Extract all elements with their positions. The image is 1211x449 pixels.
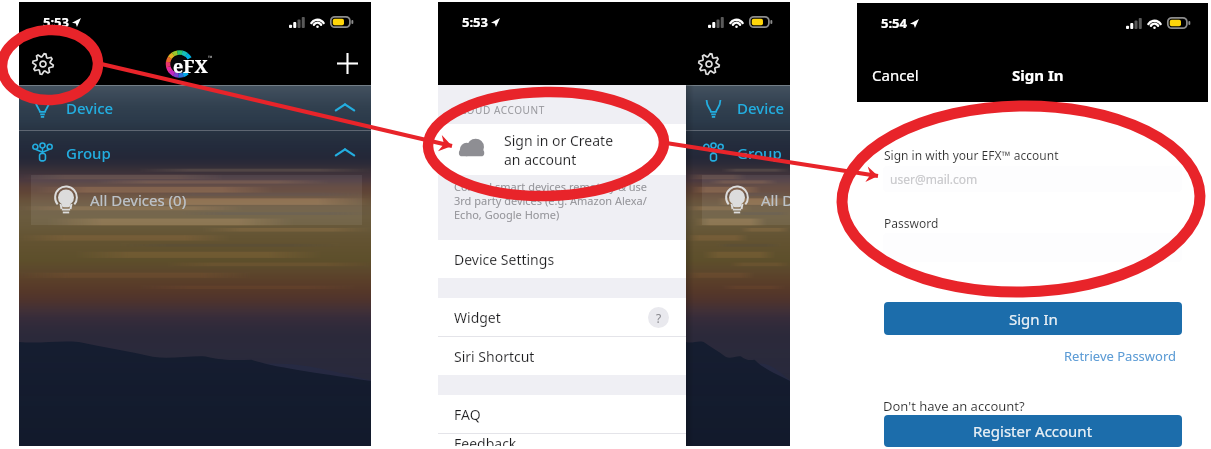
button[interactable]: user@mail.com: [883, 166, 1182, 192]
staticText: Sign In: [1009, 309, 1058, 329]
button[interactable]: All Devices (0): [31, 175, 362, 225]
staticText: ™: [208, 54, 213, 62]
staticText: user@mail.com: [890, 171, 978, 187]
button[interactable]: Sign in or Create: [438, 124, 686, 175]
button[interactable]: Feedback: [438, 434, 686, 446]
staticText: Password: [884, 215, 939, 231]
staticText: Feedback: [454, 434, 517, 446]
button[interactable]: Widget: [438, 298, 686, 336]
staticText: FAQ: [454, 405, 481, 424]
staticText: All Devices (0): [90, 190, 187, 210]
staticText: Group: [66, 143, 111, 163]
staticText: Group: [737, 143, 782, 163]
staticText: 5:53: [43, 13, 69, 31]
button[interactable]: Cancel: [857, 55, 931, 95]
staticText: All Devices (0): [761, 190, 790, 210]
staticText: CLOUD ACCOUNT: [454, 103, 545, 117]
button[interactable]: Siri Shortcut: [438, 337, 686, 375]
button[interactable]: Add device: [323, 42, 371, 85]
button[interactable]: Device: [19, 86, 371, 130]
staticText: Sign in or Create: [504, 131, 614, 150]
staticText: Device: [66, 98, 114, 118]
staticText: 5:53: [462, 13, 488, 31]
staticText: ?: [656, 310, 662, 326]
staticText: Sign In: [1012, 65, 1064, 85]
staticText: Register Account: [973, 421, 1093, 441]
staticText: Siri Shortcut: [454, 347, 535, 366]
staticText: an account: [504, 150, 577, 169]
button[interactable]: Settings: [19, 42, 67, 85]
button[interactable]: Retrieve Password: [1060, 343, 1181, 369]
button[interactable]: FAQ: [438, 395, 686, 433]
staticText: Sign in with your EFX™ account: [884, 147, 1059, 163]
staticText: 5:54: [881, 14, 907, 32]
staticText: Don't have an account?: [883, 397, 1025, 415]
staticText: Retrieve Password: [1064, 347, 1177, 365]
staticText: Device Settings: [454, 250, 555, 269]
button[interactable]: Group: [19, 131, 371, 175]
button[interactable]: [883, 233, 1182, 262]
staticText: Control smart devices remotely & use 3rd…: [454, 179, 648, 222]
staticText: Widget: [454, 308, 501, 327]
button[interactable]: Device Settings: [438, 240, 686, 278]
staticText: Cancel: [872, 65, 919, 85]
button[interactable]: Sign In: [884, 302, 1182, 335]
staticText: eFX: [173, 54, 208, 79]
button[interactable]: Register Account: [884, 415, 1182, 447]
staticText: Device: [737, 98, 785, 118]
button[interactable]: Help: [648, 307, 669, 328]
